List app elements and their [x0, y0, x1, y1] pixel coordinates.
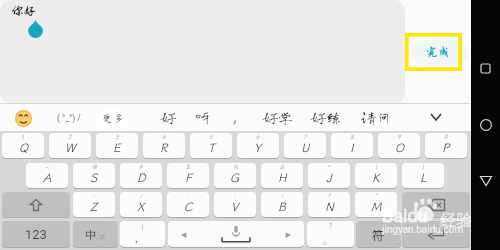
button[interactable]: 1: [2, 133, 44, 158]
staticText: 8: [350, 133, 354, 141]
staticText: 你好: [11, 4, 37, 18]
button[interactable]: 9: [378, 133, 420, 158]
staticText: C: [184, 199, 193, 215]
other: Space: [168, 221, 304, 247]
button[interactable]: /: [120, 192, 162, 217]
staticText: 中: [85, 226, 96, 242]
button[interactable]: %: [214, 163, 256, 188]
staticText: F: [185, 170, 192, 186]
button[interactable]: ": [355, 192, 397, 217]
staticText: ?: [327, 192, 331, 200]
button[interactable]: Home: [471, 113, 500, 137]
button[interactable]: ~: [26, 163, 68, 188]
staticText: B: [278, 199, 286, 215]
button[interactable]: 123: [2, 221, 70, 247]
staticText: %: [233, 163, 238, 171]
staticText: Q: [19, 140, 28, 156]
staticText: W: [65, 140, 76, 156]
button[interactable]: Back: [471, 169, 500, 193]
staticText: 完成: [426, 46, 450, 59]
staticText: P: [442, 140, 450, 156]
staticText: I: [350, 140, 354, 156]
button[interactable]: Shift: [2, 192, 70, 217]
button[interactable]: ): [402, 163, 444, 188]
button[interactable]: ?: [307, 221, 354, 247]
other: Enter: [402, 221, 470, 247]
staticText: ~: [45, 163, 49, 171]
staticText: 。: [323, 232, 333, 246]
staticText: R: [160, 140, 168, 156]
button[interactable]: 7: [284, 133, 326, 158]
button[interactable]: 2: [49, 133, 91, 158]
button[interactable]: 6: [237, 133, 279, 158]
staticText: 5: [209, 133, 213, 141]
staticText: $: [186, 163, 190, 171]
button[interactable]: ;: [214, 192, 256, 217]
button[interactable]: Expand candidates: [424, 105, 448, 128]
staticText: /: [140, 192, 143, 200]
staticText: ，: [227, 110, 243, 125]
button[interactable]: !: [261, 192, 303, 217]
button[interactable]: :: [167, 192, 209, 217]
staticText: 请问: [361, 110, 392, 125]
button[interactable]: *: [308, 163, 350, 188]
staticText: ?: [329, 222, 333, 230]
staticText: A: [43, 170, 52, 186]
staticText: L: [420, 170, 427, 186]
staticText: 好: [161, 110, 177, 125]
button[interactable]: 完成: [412, 40, 468, 65]
staticText: ": [375, 192, 378, 200]
staticText: Y: [254, 140, 262, 156]
staticText: 7: [303, 133, 307, 141]
staticText: 4: [162, 133, 166, 141]
staticText: 6: [256, 133, 260, 141]
other: Shift: [2, 192, 70, 217]
button[interactable]: ( °_°) /: [57, 110, 81, 126]
button[interactable]: 好: [161, 109, 177, 126]
staticText: Z: [90, 199, 98, 215]
button[interactable]: 8: [331, 133, 373, 158]
button[interactable]: 符: [356, 221, 401, 247]
button[interactable]: 好学: [263, 109, 294, 126]
staticText: 123: [25, 227, 47, 242]
staticText: 3: [115, 133, 119, 141]
button[interactable]: 5: [190, 133, 232, 158]
button[interactable]: ?: [308, 192, 350, 217]
button[interactable]: Backspace: [402, 192, 470, 217]
staticText: T: [208, 140, 215, 156]
staticText: D: [137, 170, 146, 186]
button[interactable]: Space: [168, 221, 304, 247]
button[interactable]: #: [120, 163, 162, 188]
staticText: -: [93, 192, 96, 200]
button[interactable]: 请问: [361, 109, 392, 126]
staticText: N: [325, 199, 334, 215]
staticText: S: [90, 170, 98, 186]
staticText: E: [113, 140, 121, 156]
button[interactable]: 好练: [311, 109, 342, 126]
button[interactable]: 0: [425, 133, 467, 158]
button[interactable]: ，: [120, 221, 165, 247]
button[interactable]: 中: [73, 221, 118, 247]
button[interactable]: 更多: [99, 110, 127, 125]
button[interactable]: Recent apps: [471, 56, 500, 80]
button[interactable]: ，: [227, 109, 243, 126]
button[interactable]: 呀: [195, 109, 211, 126]
staticText: ): [422, 163, 425, 171]
button[interactable]: @: [73, 163, 115, 188]
staticText: 2: [68, 133, 72, 141]
button[interactable]: Emoji: [15, 110, 32, 127]
button[interactable]: 4: [143, 133, 185, 158]
staticText: *: [327, 163, 331, 171]
other: Backspace: [402, 192, 470, 217]
button[interactable]: $: [167, 163, 209, 188]
button[interactable]: 3: [96, 133, 138, 158]
staticText: ( °_°) /: [57, 113, 81, 123]
staticText: 经验: [440, 207, 473, 230]
staticText: @: [92, 163, 97, 171]
staticText: O: [395, 140, 404, 156]
button[interactable]: (: [355, 163, 397, 188]
button[interactable]: -: [73, 192, 115, 217]
button[interactable]: [0, 0, 405, 103]
button[interactable]: Enter: [402, 221, 470, 247]
button[interactable]: &: [261, 163, 303, 188]
